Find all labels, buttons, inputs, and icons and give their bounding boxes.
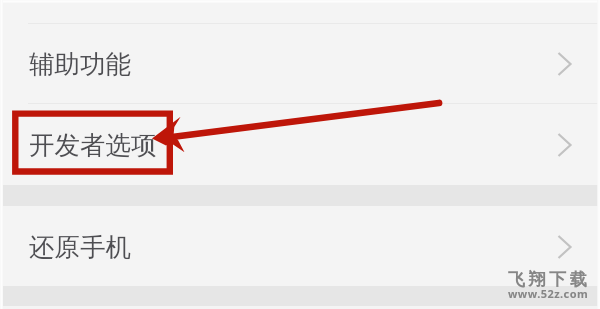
button[interactable]: Open 开发者选项 — [547, 127, 583, 163]
staticText: 飞翔下载 — [508, 269, 591, 290]
staticText: 还原手机 — [29, 231, 131, 263]
button[interactable]: 还原手机 — [0, 206, 600, 286]
button[interactable]: 辅助功能 — [0, 24, 600, 103]
button[interactable]: Open 还原手机 — [547, 228, 583, 264]
staticText: 辅助功能 — [29, 48, 131, 80]
staticText: www.52z.com — [508, 286, 589, 301]
button[interactable]: 开发者选项 — [0, 104, 600, 185]
button[interactable]: Open 辅助功能 — [547, 46, 583, 82]
staticText: 开发者选项 — [29, 129, 157, 161]
